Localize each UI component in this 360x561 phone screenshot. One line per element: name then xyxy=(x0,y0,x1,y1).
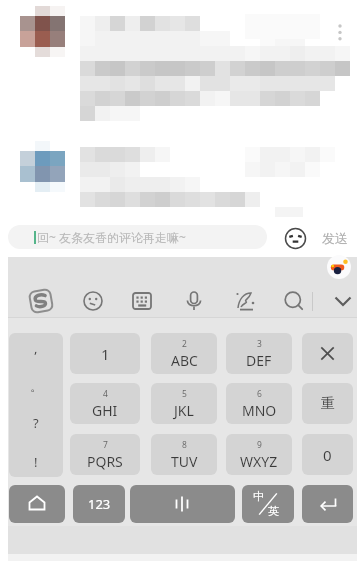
button[interactable]: 123 xyxy=(73,485,125,523)
button[interactable]: Chinese/English xyxy=(242,485,294,523)
button[interactable]: Keyboard xyxy=(126,285,158,317)
button[interactable]: 2ABC xyxy=(151,333,217,374)
button[interactable]: Home xyxy=(9,485,65,523)
staticText: 回~ 友条友香的评论再走嘛~ xyxy=(37,229,186,245)
staticText: ? xyxy=(33,414,39,432)
staticText: GHI xyxy=(92,401,118,420)
staticText: ! xyxy=(34,453,38,471)
button[interactable]: Hide keyboard xyxy=(327,285,359,317)
button[interactable]: 0 xyxy=(302,434,353,475)
button[interactable]: 回~ 友条友香的评论再走嘛~ xyxy=(8,225,267,249)
staticText: 3 xyxy=(257,338,262,350)
button[interactable]: Voice input xyxy=(178,285,210,317)
staticText: 5 xyxy=(182,388,187,400)
button[interactable]: 8TUV xyxy=(151,434,217,475)
staticText: MNO xyxy=(242,401,277,420)
button[interactable]: 发送 xyxy=(314,226,356,249)
staticText: 中 xyxy=(253,489,264,503)
staticText: 8 xyxy=(182,439,187,451)
button[interactable]: Punctuation xyxy=(9,333,63,477)
staticText: 1 xyxy=(101,344,110,364)
button[interactable]: Emoji xyxy=(284,227,307,250)
button[interactable]: Handwriting xyxy=(229,285,261,317)
button[interactable]: More options xyxy=(330,18,350,46)
button[interactable]: Emoji xyxy=(77,285,109,317)
staticText: 6 xyxy=(257,388,262,400)
button[interactable]: 1 xyxy=(70,333,140,374)
staticText: ABC xyxy=(171,351,198,370)
staticText: 英 xyxy=(268,504,279,518)
button[interactable]: Input method xyxy=(25,285,57,317)
staticText: JKL xyxy=(174,401,194,420)
staticText: 4 xyxy=(103,388,108,400)
staticText: 2 xyxy=(182,338,187,350)
staticText: WXYZ xyxy=(240,452,278,471)
button[interactable]: Delete xyxy=(302,333,353,374)
staticText: 123 xyxy=(88,495,111,513)
staticText: DEF xyxy=(246,351,272,370)
button[interactable]: 3DEF xyxy=(226,333,292,374)
staticText: 发送 xyxy=(322,230,348,246)
button[interactable]: Voice xyxy=(130,485,235,523)
button[interactable]: 9WXYZ xyxy=(226,434,292,475)
button[interactable]: 5JKL xyxy=(151,383,217,424)
staticText: 9 xyxy=(257,439,262,451)
staticText: 0 xyxy=(323,445,332,465)
button[interactable]: Assistant xyxy=(327,255,351,279)
button[interactable]: 6MNO xyxy=(226,383,292,424)
staticText: , xyxy=(34,339,38,357)
staticText: PQRS xyxy=(87,452,123,471)
button[interactable]: 7PQRS xyxy=(70,434,140,475)
staticText: 。 xyxy=(30,378,43,394)
button[interactable]: 4GHI xyxy=(70,383,140,424)
staticText: TUV xyxy=(171,452,198,471)
staticText: 重 xyxy=(321,395,335,413)
button[interactable]: Enter xyxy=(302,485,353,523)
staticText: 7 xyxy=(103,439,108,451)
button[interactable]: 重 xyxy=(302,383,353,424)
button[interactable]: Search xyxy=(278,285,310,317)
